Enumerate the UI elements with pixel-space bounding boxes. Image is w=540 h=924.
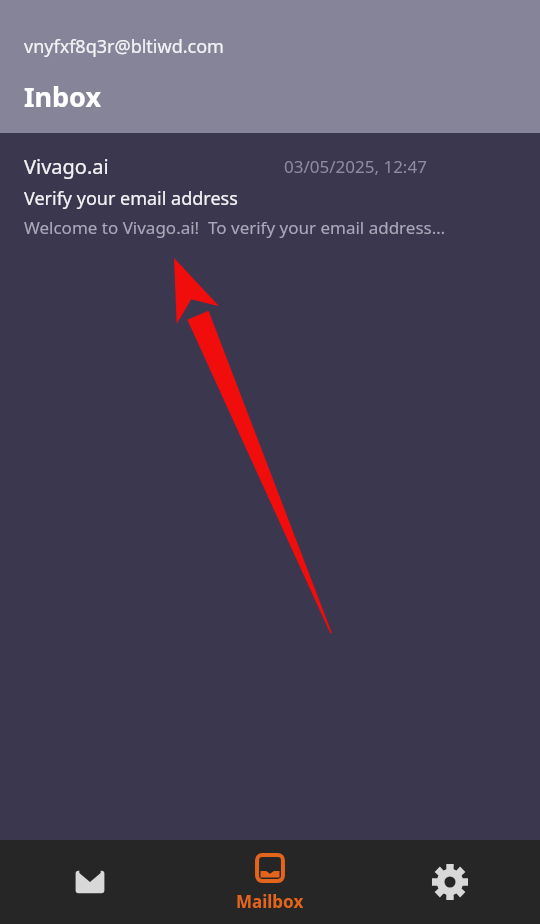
button[interactable]: Mailbox [180,840,360,924]
button[interactable]: Vivago.ai [0,133,540,253]
button[interactable]: Mail [0,840,180,924]
staticText: Mailbox [236,890,304,913]
staticText: Welcome to Vivago.ai! To verify your ema… [24,216,446,239]
staticText: Verify your email address [24,186,238,211]
staticText: 03/05/2025, 12:47 [284,155,427,178]
button[interactable]: Settings [360,840,540,924]
staticText: Inbox [24,78,102,115]
staticText: vnyfxf8q3r@bltiwd.com [24,34,224,59]
staticText: Vivago.ai [24,153,109,180]
